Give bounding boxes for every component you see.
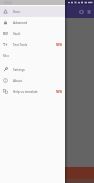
staticText: NEW [56, 43, 63, 47]
button[interactable]: Vault [0, 28, 65, 39]
button[interactable]: Text Tools [0, 39, 65, 50]
staticText: Advanced [13, 21, 28, 25]
button[interactable]: Basic [0, 6, 65, 17]
staticText: 10:41 [4, 1, 13, 5]
staticText: Basic [13, 10, 21, 14]
button[interactable]: Delete [85, 8, 93, 16]
button[interactable]: About [0, 75, 65, 86]
button[interactable]: Settings [0, 64, 65, 75]
staticText: NEW [56, 90, 63, 94]
staticText: Text Tools [13, 43, 28, 47]
staticText: Misc [3, 54, 10, 58]
button[interactable]: Help us translate [0, 86, 65, 97]
button[interactable]: History [77, 8, 85, 16]
staticText: About [13, 79, 22, 83]
staticText: Help us translate [13, 90, 38, 94]
button[interactable]: Advanced [0, 17, 65, 28]
staticText: Settings [13, 68, 25, 72]
staticText: Vault [13, 32, 21, 36]
